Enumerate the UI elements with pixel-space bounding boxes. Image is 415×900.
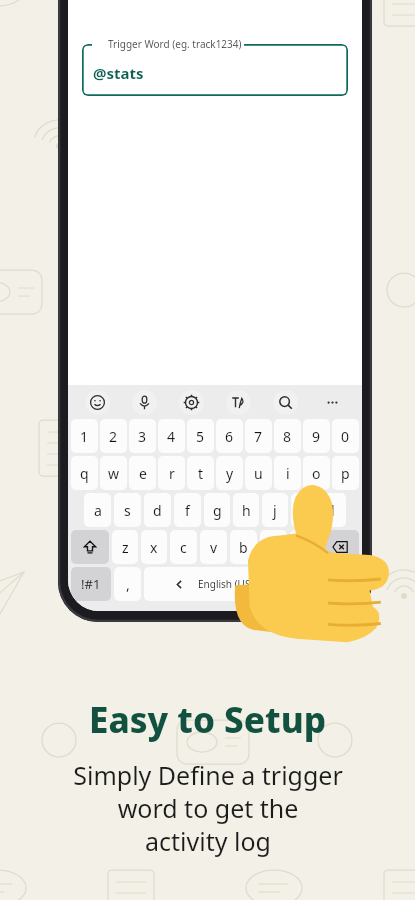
button[interactable]: t bbox=[187, 456, 214, 490]
button[interactable]: !#1 bbox=[71, 567, 111, 601]
staticText: v bbox=[210, 538, 218, 557]
staticText: Simply Define a trigger word to get the … bbox=[73, 758, 343, 858]
button[interactable]: c bbox=[170, 530, 197, 564]
button[interactable]: i bbox=[274, 456, 301, 490]
staticText: Easy to Setup bbox=[89, 696, 326, 744]
button[interactable]: n bbox=[260, 530, 287, 564]
button[interactable]: r bbox=[158, 456, 185, 490]
button[interactable]: Shift bbox=[71, 530, 109, 564]
staticText: r bbox=[169, 464, 175, 483]
button[interactable]: Backspace bbox=[320, 530, 359, 564]
button[interactable]: 7 bbox=[245, 419, 272, 453]
button[interactable]: Enter bbox=[318, 567, 359, 601]
button[interactable]: 6 bbox=[216, 419, 243, 453]
staticText: l bbox=[331, 501, 335, 520]
staticText: , bbox=[126, 575, 130, 594]
button[interactable]: 2 bbox=[100, 419, 127, 453]
staticText: 7 bbox=[254, 427, 263, 446]
staticText: Trigger Word (eg. track1234) bbox=[108, 37, 242, 51]
staticText: 3 bbox=[138, 427, 147, 446]
staticText: 6 bbox=[225, 427, 234, 446]
staticText: d bbox=[153, 501, 162, 520]
button[interactable]: a bbox=[84, 493, 111, 527]
button[interactable]: w bbox=[100, 456, 127, 490]
button[interactable]: , bbox=[114, 567, 141, 601]
button[interactable]: q bbox=[71, 456, 98, 490]
staticText: w bbox=[108, 464, 120, 483]
button[interactable]: Emoji bbox=[74, 385, 121, 419]
button[interactable]: Handwriting bbox=[215, 385, 262, 419]
button[interactable]: e bbox=[129, 456, 156, 490]
staticText: 9 bbox=[312, 427, 321, 446]
staticText: c bbox=[180, 538, 187, 557]
button[interactable]: f bbox=[174, 493, 201, 527]
button[interactable]: v bbox=[200, 530, 227, 564]
button[interactable]: 8 bbox=[274, 419, 301, 453]
button[interactable]: p bbox=[332, 456, 359, 490]
button[interactable]: Keyboard settings bbox=[168, 385, 215, 419]
staticText: x bbox=[150, 538, 158, 557]
button[interactable]: l bbox=[320, 493, 346, 527]
button[interactable]: 0 bbox=[332, 419, 359, 453]
button[interactable]: 5 bbox=[187, 419, 214, 453]
staticText: f bbox=[185, 501, 190, 520]
button[interactable]: 3 bbox=[129, 419, 156, 453]
button[interactable]: 1 bbox=[71, 419, 98, 453]
staticText: English (US) bbox=[198, 577, 254, 591]
button[interactable]: Voice input bbox=[121, 385, 168, 419]
button[interactable]: @stats bbox=[82, 44, 348, 96]
button[interactable]: y bbox=[216, 456, 243, 490]
button[interactable]: b bbox=[230, 530, 257, 564]
button[interactable]: 4 bbox=[158, 419, 185, 453]
button[interactable]: m bbox=[290, 530, 317, 564]
button[interactable]: English (US) bbox=[144, 567, 285, 601]
staticText: u bbox=[254, 464, 263, 483]
staticText: q bbox=[80, 464, 89, 483]
button[interactable]: z bbox=[112, 530, 138, 564]
button[interactable]: k bbox=[291, 493, 317, 527]
staticText: a bbox=[94, 501, 102, 520]
button[interactable]: More options bbox=[309, 385, 356, 419]
staticText: y bbox=[226, 464, 234, 483]
staticText: j bbox=[273, 501, 277, 520]
button[interactable]: u bbox=[245, 456, 272, 490]
staticText: 4 bbox=[167, 427, 176, 446]
staticText: b bbox=[239, 538, 248, 557]
staticText: s bbox=[124, 501, 131, 520]
button[interactable]: x bbox=[141, 530, 167, 564]
button[interactable]: d bbox=[144, 493, 171, 527]
staticText: z bbox=[122, 538, 129, 557]
staticText: t bbox=[198, 464, 204, 483]
staticText: h bbox=[242, 501, 251, 520]
staticText: @stats bbox=[93, 63, 144, 83]
staticText: 0 bbox=[341, 427, 350, 446]
staticText: !#1 bbox=[81, 575, 101, 593]
button[interactable]: h bbox=[233, 493, 259, 527]
button[interactable]: j bbox=[262, 493, 288, 527]
button[interactable]: g bbox=[204, 493, 230, 527]
staticText: i bbox=[286, 464, 290, 483]
staticText: o bbox=[312, 464, 321, 483]
button[interactable]: s bbox=[114, 493, 141, 527]
staticText: 5 bbox=[196, 427, 205, 446]
staticText: p bbox=[341, 464, 350, 483]
staticText: g bbox=[213, 501, 222, 520]
staticText: m bbox=[297, 538, 311, 557]
staticText: 2 bbox=[109, 427, 118, 446]
staticText: 8 bbox=[283, 427, 292, 446]
button[interactable]: o bbox=[303, 456, 330, 490]
button[interactable]: 9 bbox=[303, 419, 330, 453]
button[interactable]: Search bbox=[262, 385, 309, 419]
staticText: e bbox=[139, 464, 147, 483]
staticText: 1 bbox=[80, 427, 89, 446]
